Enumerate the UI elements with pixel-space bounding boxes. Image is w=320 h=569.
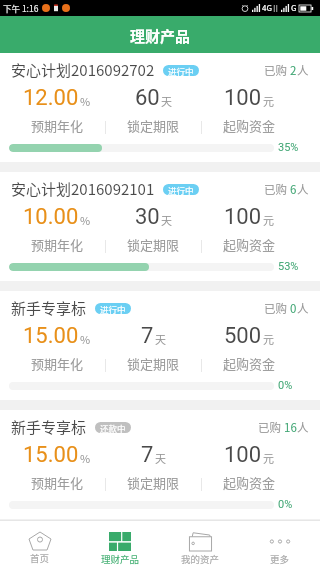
staticText: 天 <box>161 212 172 228</box>
staticText: 新手专享标 <box>11 297 87 319</box>
staticText: 7 <box>141 323 154 349</box>
staticText: G <box>291 2 297 14</box>
staticText: 0 <box>290 300 297 317</box>
staticText: 0% <box>278 379 293 392</box>
staticText: 预期年化 <box>31 354 84 373</box>
staticText: 进行中 <box>168 184 194 195</box>
staticText: 还款中 <box>100 422 126 433</box>
button[interactable]: Home <box>0 521 80 569</box>
button[interactable]: More <box>240 521 320 569</box>
button[interactable]: Financial Products <box>80 521 160 569</box>
staticText: 天 <box>155 450 166 466</box>
staticText: 起购资金 <box>223 116 276 135</box>
staticText: 元 <box>263 93 274 109</box>
staticText: 10.00 <box>23 204 79 230</box>
staticText: 锁定期限 <box>127 116 180 135</box>
staticText: 6 <box>290 181 297 198</box>
staticText: 锁定期限 <box>127 473 180 492</box>
staticText: 30 <box>135 204 160 230</box>
staticText: 进行中 <box>168 65 194 76</box>
staticText: 元 <box>263 212 274 228</box>
staticText: 进行中 <box>100 303 126 314</box>
staticText: 预期年化 <box>31 235 84 254</box>
staticText: 理财产品 <box>130 25 191 47</box>
staticText: 16 <box>284 419 297 436</box>
staticText: 我的资产 <box>181 552 220 566</box>
staticText: 锁定期限 <box>127 354 180 373</box>
staticText: 12.00 <box>23 85 79 111</box>
staticText: 人 <box>297 300 309 317</box>
staticText: 理财产品 <box>101 552 140 566</box>
staticText: 100 <box>224 204 262 230</box>
staticText: % <box>80 450 91 466</box>
staticText: 60 <box>135 85 160 111</box>
staticText: 已购 <box>264 300 290 317</box>
staticText: 起购资金 <box>223 354 276 373</box>
staticText: 已购 <box>264 62 290 79</box>
staticText: 100 <box>224 85 262 111</box>
staticText: 已购 <box>264 181 290 198</box>
staticText: 元 <box>263 450 274 466</box>
staticText: 起购资金 <box>223 235 276 254</box>
staticText: 500 <box>224 323 262 349</box>
staticText: 更多 <box>270 552 290 566</box>
staticText: 已购 <box>258 419 284 436</box>
staticText: % <box>80 331 91 347</box>
staticText: 锁定期限 <box>127 235 180 254</box>
staticText: 天 <box>155 331 166 347</box>
staticText: 起购资金 <box>223 473 276 492</box>
staticText: 2 <box>290 62 297 79</box>
button[interactable]: My Assets <box>160 521 240 569</box>
staticText: 预期年化 <box>31 473 84 492</box>
staticText: 安心计划2016092702 <box>11 59 155 81</box>
staticText: 元 <box>263 331 274 347</box>
staticText: 35% <box>278 141 298 154</box>
staticText: 天 <box>161 93 172 109</box>
staticText: 15.00 <box>23 323 79 349</box>
button[interactable]: 新手专享标 <box>0 410 320 519</box>
button[interactable]: 安心计划2016092101 <box>0 172 320 281</box>
button[interactable]: 安心计划2016092702 <box>0 53 320 162</box>
staticText: 预期年化 <box>31 116 84 135</box>
staticText: 安心计划2016092101 <box>11 178 155 200</box>
staticText: 人 <box>297 62 309 79</box>
staticText: 首页 <box>30 551 50 565</box>
staticText: 新手专享标 <box>11 416 87 438</box>
staticText: % <box>80 212 91 228</box>
staticText: % <box>80 93 91 109</box>
staticText: 15.00 <box>23 442 79 468</box>
staticText: 7 <box>141 442 154 468</box>
staticText: 0% <box>278 498 293 511</box>
staticText: 人 <box>297 419 309 436</box>
staticText: 100 <box>224 442 262 468</box>
staticText: 下午 1:16 <box>3 2 39 14</box>
button[interactable]: 新手专享标 <box>0 291 320 400</box>
staticText: 人 <box>297 181 309 198</box>
staticText: 53% <box>278 260 298 273</box>
staticText: 4G <box>262 2 272 14</box>
